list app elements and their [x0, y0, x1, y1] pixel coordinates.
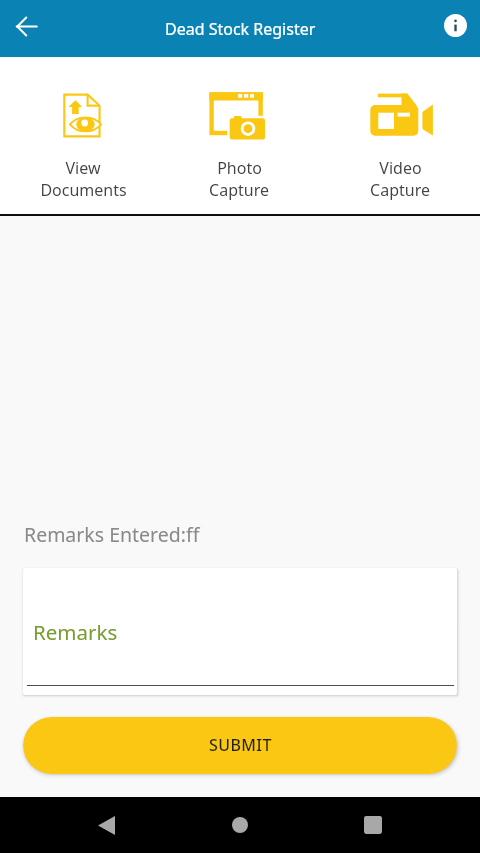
button[interactable]: Information — [439, 9, 471, 41]
staticText: Capture — [209, 179, 269, 201]
staticText: Photo — [217, 157, 262, 179]
button[interactable]: Photo Capture — [160, 57, 320, 214]
staticText: Dead Stock Register — [165, 18, 316, 40]
button[interactable]: Remarks — [23, 568, 457, 695]
staticText: Capture — [370, 179, 430, 201]
staticText: SUBMIT — [209, 734, 272, 756]
staticText: Video — [379, 157, 422, 179]
staticText: Remarks — [33, 618, 118, 646]
staticText: View — [65, 157, 101, 179]
button[interactable]: Recent apps — [349, 801, 397, 849]
button[interactable]: View Documents — [0, 57, 160, 214]
button[interactable]: SUBMIT — [23, 717, 457, 774]
button[interactable]: Video Capture — [320, 57, 480, 214]
button[interactable]: Back — [82, 801, 130, 849]
staticText: Documents — [40, 179, 127, 201]
button[interactable]: Home — [216, 801, 264, 849]
staticText: Remarks Entered:ff — [24, 521, 200, 548]
button[interactable]: Back — [7, 7, 45, 45]
